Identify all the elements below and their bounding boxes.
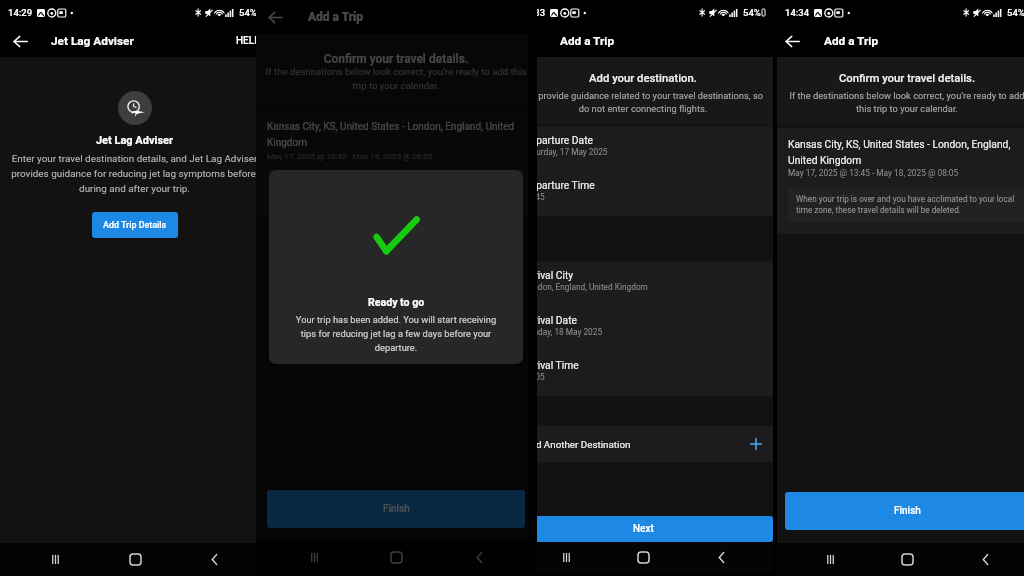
staticText: If the destinations below look correct, … (783, 90, 1024, 114)
staticText: 14:33 (521, 7, 546, 18)
staticText: Departure Date (524, 134, 593, 146)
button[interactable]: Add Another Destination (513, 426, 773, 462)
button[interactable]: Home (618, 542, 668, 573)
staticText: May 17, 2025 @ 13:45 - May 18, 2025 @ 08… (267, 151, 433, 160)
staticText: 54% (743, 7, 761, 18)
staticText: We provide guidance related to your trav… (517, 90, 769, 114)
staticText: 54% (1007, 7, 1024, 18)
button[interactable]: Departure Time (513, 171, 773, 216)
button[interactable]: Recents (30, 543, 80, 576)
staticText: Arrival Date (524, 314, 577, 326)
staticText: Jet Lag Adviser (0, 134, 269, 147)
button[interactable]: Recents (805, 543, 855, 576)
staticText: 14:34 (785, 7, 810, 18)
button[interactable]: Home (882, 543, 932, 576)
staticText: If the destinations below look correct, … (262, 66, 530, 91)
staticText: Confirm your travel details. (777, 72, 1024, 85)
staticText: When your trip is over and you have accl… (796, 194, 1018, 215)
button[interactable]: Add Trip Details (92, 212, 178, 238)
button[interactable]: Back (189, 543, 239, 576)
button[interactable]: Back (960, 543, 1010, 576)
staticText: Jet Lag Adviser (51, 34, 134, 48)
button[interactable]: Back (696, 542, 746, 573)
staticText: Next (633, 523, 654, 535)
staticText: Arrival Time (524, 359, 579, 371)
staticText: Ready to go (368, 296, 425, 308)
staticText: Your trip has been added. You will start… (288, 314, 504, 353)
staticText: Add Another Destination (524, 439, 631, 450)
button[interactable]: Back (454, 539, 504, 576)
staticText: 14:29 (8, 7, 33, 18)
staticText: Finish (894, 505, 921, 517)
staticText: Kansas City, KS, United States - London,… (267, 121, 525, 149)
staticText: Departure Time (524, 179, 595, 191)
button[interactable]: HELP (228, 29, 269, 53)
button[interactable]: Home (371, 539, 421, 576)
button[interactable]: Recents (541, 542, 591, 573)
staticText: Saturday, 17 May 2025 (524, 147, 608, 157)
button[interactable]: Finish (267, 490, 525, 528)
button[interactable]: Finish (785, 492, 1024, 530)
staticText: Enter your travel destination details, a… (11, 153, 258, 194)
button[interactable]: Arrival Date (513, 306, 773, 351)
staticText: Finish (383, 503, 410, 515)
button[interactable]: Arrival Time (513, 351, 773, 396)
staticText: HELP (236, 35, 261, 47)
button[interactable]: Navigate up (262, 4, 288, 30)
staticText: May 17, 2025 @ 13:45 - May 18, 2025 @ 08… (788, 168, 959, 178)
button[interactable]: Arrival City (513, 261, 773, 306)
staticText: London, England, United Kingdom (524, 282, 648, 292)
staticText: 54% (239, 7, 257, 18)
staticText: Kansas City, KS, United States - London,… (788, 138, 1024, 166)
staticText: Add a Trip (560, 34, 615, 48)
staticText: Add a Trip (824, 34, 879, 48)
staticText: Add your destination. (513, 72, 773, 85)
staticText: Add a Trip (308, 10, 364, 24)
staticText: Add Trip Details (103, 220, 167, 230)
staticText: Confirm your travel details. (256, 52, 536, 66)
button[interactable]: Home (110, 543, 160, 576)
staticText: Sunday, 18 May 2025 (524, 327, 603, 337)
staticText: 08:05 (524, 372, 545, 382)
button[interactable]: Navigate up (7, 28, 33, 54)
button[interactable]: Recents (289, 539, 339, 576)
button[interactable]: Navigate up (779, 28, 805, 54)
button[interactable]: Next (513, 516, 773, 542)
button[interactable]: Departure Date (513, 126, 773, 171)
button[interactable]: Navigate up (515, 28, 541, 54)
staticText: 13:45 (524, 192, 545, 202)
staticText: Arrival City (524, 269, 574, 281)
